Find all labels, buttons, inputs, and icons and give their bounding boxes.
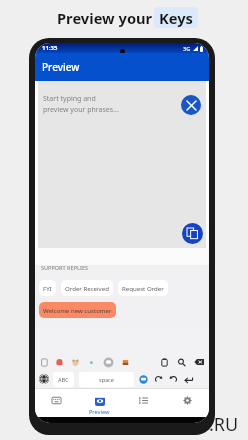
button[interactable]: Welcome new customer (39, 302, 116, 318)
button[interactable]: FYI (39, 280, 56, 296)
staticText: Welcome new customer (43, 306, 112, 314)
button[interactable]: Phone sticker (55, 358, 64, 367)
staticText: .RU (209, 412, 239, 437)
button[interactable]: Copy (182, 223, 203, 244)
button[interactable]: Translate (139, 375, 148, 384)
staticText: FYI (43, 284, 52, 292)
staticText: 3G (183, 45, 191, 52)
button[interactable]: Request Order (118, 280, 168, 296)
button[interactable]: Redo (154, 375, 163, 384)
button[interactable]: Search (177, 358, 186, 367)
button[interactable]: Undo (169, 375, 178, 384)
button[interactable]: Preview (78, 389, 121, 417)
button[interactable]: ABC (53, 372, 74, 387)
button[interactable]: Keyboard (35, 389, 78, 417)
staticText: ABC (58, 376, 69, 383)
button[interactable]: Emoji (103, 357, 114, 368)
button[interactable]: Language (39, 374, 49, 384)
button[interactable]: Enter (184, 375, 193, 384)
button[interactable]: Order Received (61, 280, 113, 296)
button[interactable]: Backspace (194, 357, 204, 367)
button[interactable]: Clear text (181, 95, 201, 115)
button[interactable]: Animal sticker (71, 358, 80, 367)
staticText: Start typing and (43, 94, 96, 104)
button[interactable]: Stickers (40, 358, 49, 367)
staticText: Preview (42, 60, 80, 74)
staticText: Preview (89, 408, 110, 415)
staticText: preview your phrases... (43, 105, 119, 115)
button[interactable]: space (79, 372, 134, 387)
button[interactable]: Image (121, 358, 130, 367)
button[interactable]: Phrases (121, 389, 165, 417)
button[interactable]: Clipboard (160, 358, 169, 367)
staticText: Keys (159, 8, 193, 28)
button[interactable]: Dot (87, 358, 96, 367)
staticText: SUPPORT REPLIES (41, 264, 88, 271)
staticText: Request Order (122, 284, 164, 292)
staticText: Order Received (65, 284, 109, 292)
staticText: Preview your (57, 8, 153, 28)
staticText: 11:35 (42, 44, 58, 52)
button[interactable]: Settings (165, 389, 209, 417)
staticText: space (99, 376, 114, 383)
